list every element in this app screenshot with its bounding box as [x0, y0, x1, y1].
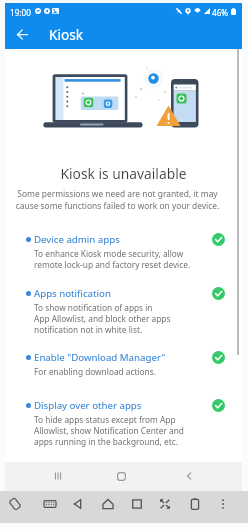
button[interactable]: Device admin apps — [5, 233, 242, 270]
button[interactable]: Apps notification — [5, 287, 242, 335]
staticText: Kiosk — [49, 25, 83, 44]
staticText: Kiosk is unavailable — [5, 164, 242, 183]
staticText: Apps notification — [34, 287, 111, 300]
staticText: Device admin apps — [34, 233, 120, 246]
button[interactable]: More options — [213, 494, 233, 514]
button[interactable]: Rotate — [5, 494, 25, 514]
button[interactable]: Overview — [127, 494, 147, 514]
button[interactable]: Back — [68, 494, 88, 514]
button[interactable]: Keyboard — [40, 494, 60, 514]
button[interactable]: Home — [98, 494, 118, 514]
staticText: Display over other apps — [34, 399, 142, 412]
button[interactable]: Enable "Download Manager" — [5, 351, 242, 377]
button[interactable]: Recents — [45, 463, 71, 489]
button[interactable]: Display over other apps — [5, 399, 242, 447]
button[interactable]: Back — [176, 463, 202, 489]
staticText: Some permissions we need are not granted… — [0, 188, 236, 212]
staticText: To enhance Kiosk mode security, allow re… — [34, 248, 191, 270]
button[interactable]: Fullscreen — [155, 494, 175, 514]
staticText: 46% — [212, 7, 229, 18]
button[interactable]: Home — [108, 463, 134, 489]
button[interactable]: Back — [9, 25, 35, 43]
staticText: For enabling download actions. — [34, 366, 156, 377]
staticText: Enable "Download Manager" — [34, 351, 166, 364]
staticText: 19:00 — [10, 7, 31, 18]
staticText: To hide apps status except from App Allo… — [34, 414, 184, 447]
button[interactable]: Clipboard — [185, 494, 205, 514]
staticText: To show notification of apps in App Allo… — [34, 302, 171, 335]
